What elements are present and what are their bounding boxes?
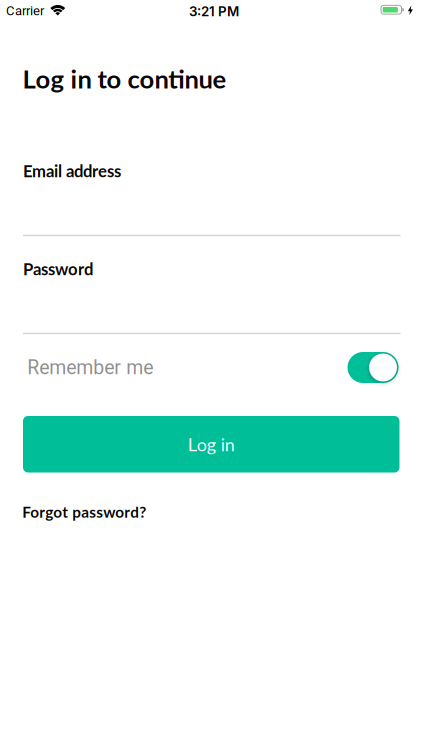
- staticText: Forgot password?: [22, 503, 146, 521]
- staticText: Log in to continue: [22, 63, 226, 94]
- staticText: 3:21 PM: [189, 3, 239, 19]
- button[interactable]: Log in: [23, 416, 399, 472]
- staticText: Carrier: [6, 3, 44, 18]
- staticText: Log in: [188, 433, 235, 455]
- staticText: Password: [23, 259, 93, 279]
- staticText: Email address: [23, 161, 121, 181]
- staticText: Remember me: [27, 356, 153, 379]
- button[interactable]: Remember me: [347, 352, 398, 383]
- button[interactable]: Forgot password?: [22, 503, 146, 521]
